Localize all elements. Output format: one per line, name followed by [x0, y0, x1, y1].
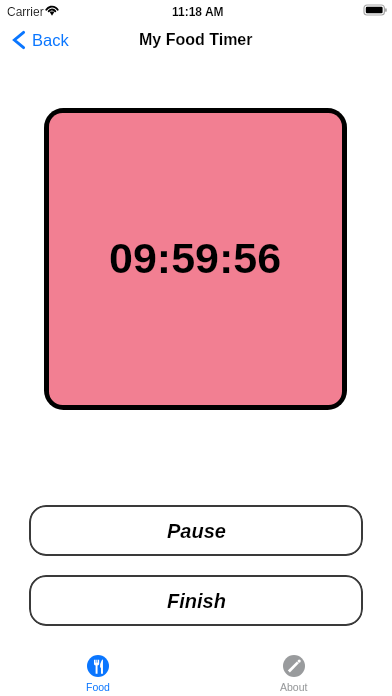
- staticText: 09:59:56: [109, 234, 282, 282]
- button[interactable]: Back: [0, 27, 77, 53]
- button[interactable]: Pause: [29, 505, 363, 556]
- other: About: [283, 655, 305, 677]
- staticText: Carrier: [7, 5, 44, 18]
- staticText: Pause: [167, 520, 226, 542]
- button[interactable]: Food: [64, 648, 132, 696]
- button[interactable]: Finish: [29, 575, 363, 626]
- staticText: 11:18 AM: [172, 5, 224, 18]
- staticText: Back: [32, 31, 69, 49]
- staticText: About: [280, 681, 308, 692]
- button[interactable]: About: [258, 648, 330, 696]
- staticText: My Food Timer: [139, 31, 253, 49]
- staticText: Food: [86, 681, 110, 692]
- staticText: Finish: [167, 590, 226, 612]
